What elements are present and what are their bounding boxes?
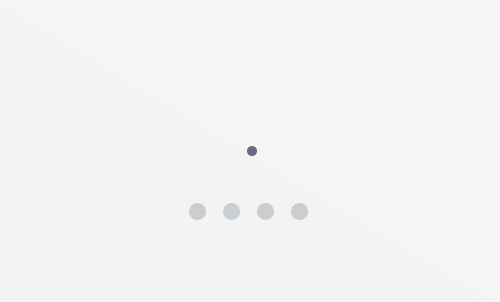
group: Page 1 of 4: [0, 0, 500, 302]
